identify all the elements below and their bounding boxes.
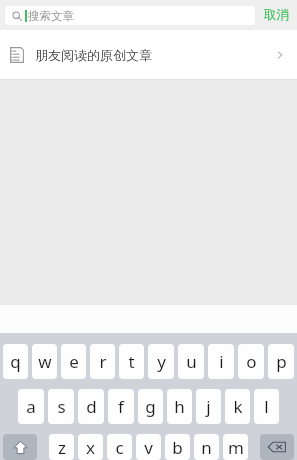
staticText: q (10, 350, 21, 373)
staticText: 取消 (264, 7, 289, 23)
button[interactable]: g (138, 389, 163, 424)
staticText: e (69, 350, 79, 373)
button[interactable]: s (48, 389, 74, 424)
staticText: w (38, 350, 52, 373)
button[interactable]: 取消 (255, 0, 297, 30)
staticText: h (174, 395, 185, 418)
staticText: y (157, 350, 166, 373)
button[interactable]: w (32, 344, 57, 379)
staticText: l (264, 395, 269, 418)
staticText: b (172, 436, 183, 459)
button[interactable]: k (225, 389, 250, 424)
button[interactable]: v (136, 434, 161, 460)
staticText: k (233, 395, 243, 418)
staticText: n (201, 436, 212, 459)
staticText: s (57, 395, 66, 418)
button[interactable]: Open (271, 46, 289, 64)
staticText: t (128, 350, 135, 373)
button[interactable]: p (268, 344, 294, 379)
button[interactable]: r (90, 344, 115, 379)
button[interactable]: Shift (3, 434, 37, 460)
staticText: x (86, 436, 95, 459)
button[interactable]: c (107, 434, 132, 460)
button[interactable]: u (178, 344, 204, 379)
staticText: r (99, 350, 107, 373)
staticText: v (144, 436, 153, 459)
staticText: 搜索文章 (28, 9, 74, 23)
staticText: g (145, 395, 156, 418)
staticText: o (246, 350, 257, 373)
staticText: f (118, 395, 124, 418)
staticText: 朋友阅读的原创文章 (35, 47, 152, 63)
staticText: z (58, 436, 66, 459)
button[interactable]: y (148, 344, 174, 379)
button[interactable]: a (18, 389, 44, 424)
staticText: i (219, 350, 224, 373)
button[interactable]: i (208, 344, 234, 379)
staticText: u (186, 350, 197, 373)
button[interactable]: z (49, 434, 74, 460)
button[interactable]: f (108, 389, 134, 424)
staticText: j (206, 395, 211, 418)
staticText: m (228, 436, 244, 459)
staticText: a (26, 395, 36, 418)
button[interactable]: e (61, 344, 86, 379)
button[interactable]: 搜索文章 (5, 6, 255, 25)
button[interactable]: q (3, 344, 28, 379)
button[interactable]: t (119, 344, 144, 379)
button[interactable]: o (238, 344, 264, 379)
button[interactable]: d (78, 389, 104, 424)
button[interactable]: n (194, 434, 219, 460)
staticText: p (276, 350, 287, 373)
button[interactable]: Backspace (260, 434, 294, 460)
button[interactable]: j (196, 389, 221, 424)
button[interactable]: 朋友阅读的原创文章 (0, 30, 297, 80)
button[interactable]: x (78, 434, 103, 460)
button[interactable]: h (167, 389, 192, 424)
button[interactable]: b (165, 434, 190, 460)
staticText: d (86, 395, 97, 418)
button[interactable]: l (254, 389, 279, 424)
button[interactable]: m (223, 434, 248, 460)
staticText: c (115, 436, 124, 459)
